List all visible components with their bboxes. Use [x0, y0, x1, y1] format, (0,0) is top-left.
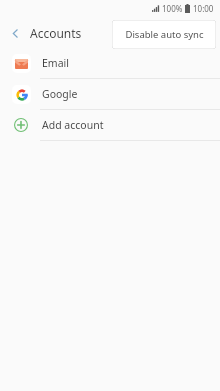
staticText: Accounts — [30, 25, 82, 41]
staticText: Add account — [42, 118, 104, 132]
button[interactable]: Back — [0, 18, 30, 48]
staticText: 10:00 — [193, 3, 214, 14]
button[interactable]: Disable auto sync — [112, 20, 216, 49]
staticText: Disable auto sync — [125, 28, 204, 41]
staticText: 100% — [162, 3, 183, 14]
button[interactable]: Add account — [0, 110, 220, 140]
staticText: Email — [42, 56, 69, 70]
button[interactable]: Email — [0, 48, 220, 78]
button[interactable]: Google — [0, 79, 220, 109]
staticText: Google — [42, 87, 78, 101]
